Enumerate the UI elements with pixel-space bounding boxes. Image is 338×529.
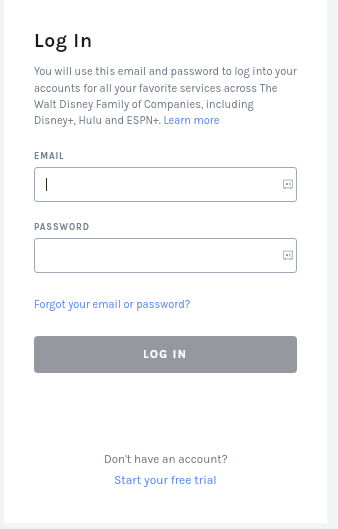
button[interactable]: Start your free trial <box>114 473 217 487</box>
button[interactable]: Password manager <box>34 238 297 273</box>
staticText: PASSWORD <box>34 222 90 233</box>
staticText: EMAIL <box>34 151 65 162</box>
button[interactable]: Forgot your email or password? <box>34 298 191 311</box>
button[interactable]: LOG IN <box>34 336 297 373</box>
button[interactable]: Password manager <box>34 167 297 202</box>
button[interactable]: Password manager <box>283 250 293 261</box>
staticText: Log In <box>34 29 93 52</box>
button[interactable]: Password manager <box>283 179 293 190</box>
staticText: You will use this email and password to … <box>34 65 297 127</box>
staticText: Don't have an account? <box>104 452 228 466</box>
staticText: LOG IN <box>143 347 188 360</box>
